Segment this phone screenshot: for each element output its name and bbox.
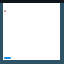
button[interactable] bbox=[4, 57, 11, 59]
